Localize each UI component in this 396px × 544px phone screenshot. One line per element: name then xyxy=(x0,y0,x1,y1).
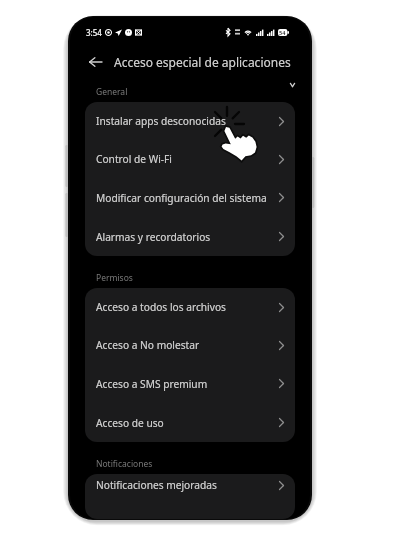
staticText: Acceso a SMS premium xyxy=(96,377,208,391)
staticText: Acceso a No molestar xyxy=(96,338,200,352)
button[interactable]: Control de Wi-Fi xyxy=(85,140,295,178)
button[interactable]: Alarmas y recordatorios xyxy=(85,217,295,256)
staticText: Acceso especial de aplicaciones xyxy=(114,54,291,70)
staticText: Control de Wi-Fi xyxy=(96,152,172,166)
button[interactable]: Modificar configuración del sistema xyxy=(85,178,295,217)
staticText: 54 xyxy=(279,29,286,36)
staticText: Instalar apps desconocidas xyxy=(96,114,226,128)
button[interactable]: Notificaciones mejoradas xyxy=(85,474,295,496)
staticText: Notificaciones mejoradas xyxy=(96,478,217,492)
staticText: 3:54 xyxy=(86,27,102,38)
button[interactable]: Acceso a No molestar xyxy=(85,326,295,364)
button[interactable]: Acceso de uso xyxy=(85,403,295,442)
button[interactable]: Instalar apps desconocidas xyxy=(85,102,295,140)
staticText: Alarmas y recordatorios xyxy=(96,230,211,244)
button[interactable]: Acceso a todos los archivos xyxy=(85,288,295,326)
staticText: Acceso a todos los archivos xyxy=(96,300,226,314)
staticText: Notificaciones xyxy=(96,458,153,470)
staticText: Permisos xyxy=(96,272,133,284)
button[interactable]: Atrás xyxy=(85,52,105,72)
staticText: General xyxy=(96,86,128,98)
button[interactable]: Acceso a SMS premium xyxy=(85,364,295,403)
staticText: Acceso de uso xyxy=(96,416,164,430)
button[interactable]: Expandir xyxy=(285,78,299,92)
staticText: Modificar configuración del sistema xyxy=(96,191,267,205)
